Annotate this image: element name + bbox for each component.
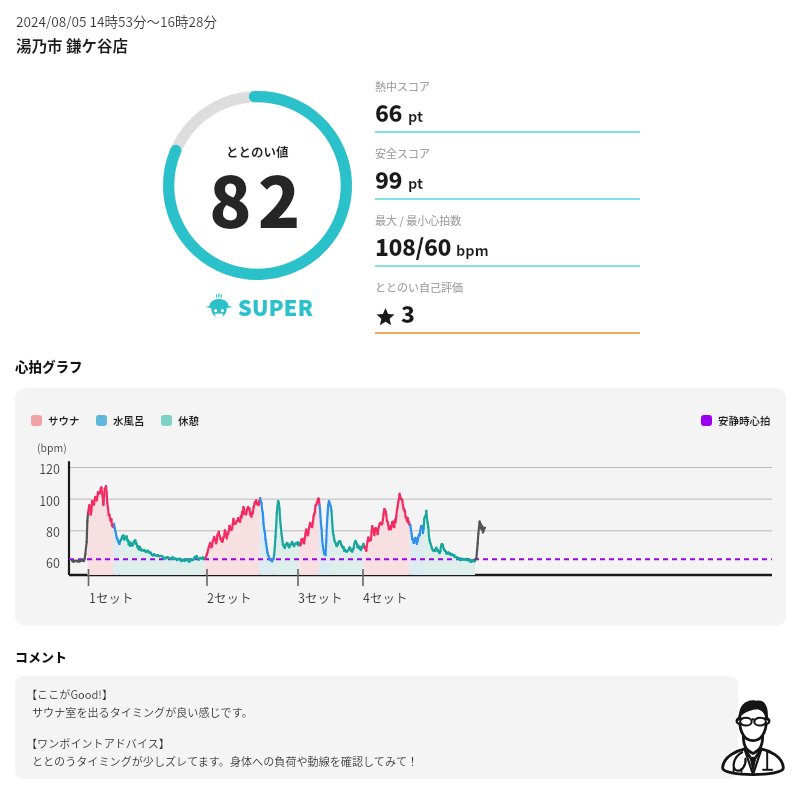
staticText: 3 bbox=[401, 296, 416, 329]
button[interactable]: ととのい値 bbox=[163, 91, 352, 280]
staticText: 休憩 bbox=[178, 413, 199, 428]
staticText: 2024/08/05 14時53分〜16時28分 bbox=[16, 11, 217, 31]
staticText: 湯乃市 鎌ケ谷店 bbox=[16, 34, 129, 56]
button[interactable]: ととのい自己評価 bbox=[375, 279, 640, 334]
staticText: pt bbox=[408, 105, 424, 126]
staticText: サウナ室を出るタイミングが良い感じです。 bbox=[32, 704, 253, 720]
staticText: 80 bbox=[31, 522, 60, 540]
button[interactable]: 熱中スコア bbox=[375, 78, 640, 145]
staticText: bpm bbox=[456, 239, 489, 260]
staticText: サウナ bbox=[48, 413, 80, 428]
staticText: 熱中スコア bbox=[375, 78, 430, 94]
staticText: pt bbox=[408, 172, 424, 193]
staticText: (bpm) bbox=[37, 440, 67, 455]
staticText: 100 bbox=[31, 491, 60, 509]
staticText: 水風呂 bbox=[113, 413, 145, 428]
staticText: 3セット bbox=[298, 588, 343, 606]
staticText: 60 bbox=[31, 553, 60, 571]
staticText: ととのうタイミングが少しズレてます。身体への負荷や動線を確認してみて！ bbox=[32, 753, 419, 769]
staticText: 最大 / 最小心拍数 bbox=[375, 212, 462, 228]
staticText: 安静時心拍 bbox=[718, 413, 771, 428]
staticText: ととのい値 bbox=[226, 142, 289, 160]
other: Doctor illustration bbox=[720, 696, 786, 778]
staticText: 安全スコア bbox=[375, 145, 430, 161]
staticText: 120 bbox=[31, 459, 60, 477]
button[interactable]: SUPER bbox=[205, 291, 314, 322]
staticText: ととのい自己評価 bbox=[375, 279, 463, 295]
staticText: コメント bbox=[15, 647, 68, 666]
staticText: 心拍グラフ bbox=[15, 356, 83, 376]
staticText: 【ワンポイントアドバイス】 bbox=[26, 735, 170, 751]
staticText: 82 bbox=[209, 147, 307, 248]
staticText: 99 bbox=[375, 162, 403, 195]
staticText: SUPER bbox=[238, 291, 314, 322]
button[interactable]: 最大 / 最小心拍数 bbox=[375, 212, 640, 279]
staticText: 1セット bbox=[89, 588, 134, 606]
staticText: 4セット bbox=[363, 588, 408, 606]
button[interactable]: 安全スコア bbox=[375, 145, 640, 212]
button[interactable]: Heart rate graph bbox=[15, 388, 786, 626]
button[interactable]: 【ここがGood!】 bbox=[15, 676, 738, 779]
staticText: 【ここがGood!】 bbox=[26, 686, 114, 702]
staticText: 108/60 bbox=[375, 229, 451, 262]
staticText: 66 bbox=[375, 95, 403, 128]
staticText: 2セット bbox=[207, 588, 252, 606]
